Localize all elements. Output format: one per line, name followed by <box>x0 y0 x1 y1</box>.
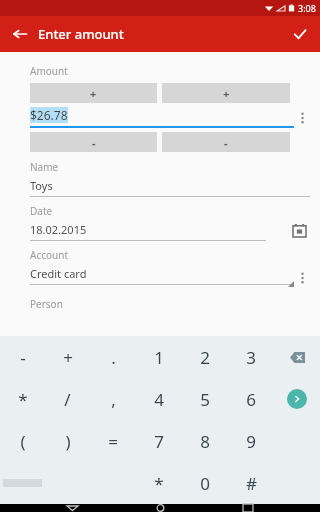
button[interactable]: 9 <box>228 420 274 462</box>
staticText: 8 <box>200 430 210 453</box>
staticText: 7 <box>154 430 164 453</box>
staticText: $26.78 <box>30 107 68 123</box>
button[interactable]: Date <box>30 204 288 241</box>
staticText: 3:08 <box>298 2 316 14</box>
staticText: Person <box>30 297 63 311</box>
button[interactable]: Back <box>60 504 84 512</box>
button[interactable]: + <box>162 83 290 103</box>
staticText: . <box>111 346 116 369</box>
staticText: ) <box>65 430 71 453</box>
other: Next <box>287 389 307 409</box>
staticText: # <box>246 472 257 495</box>
button[interactable]: - <box>30 132 157 152</box>
staticText: Credit card <box>30 266 87 281</box>
button[interactable]: / <box>45 378 90 420</box>
button[interactable]: Next <box>274 378 320 420</box>
button[interactable]: 6 <box>228 378 274 420</box>
button[interactable]: 7 <box>136 420 182 462</box>
staticText: + <box>63 346 73 369</box>
button[interactable]: = <box>90 420 136 462</box>
button[interactable]: ) <box>45 420 90 462</box>
button[interactable]: 2 <box>182 336 228 378</box>
staticText: , <box>111 388 116 411</box>
button[interactable]: Account <box>30 248 294 290</box>
button[interactable]: 8 <box>182 420 228 462</box>
staticText: 2 <box>200 346 210 369</box>
staticText: 0 <box>200 472 210 495</box>
staticText: Name <box>30 160 59 174</box>
staticText: 1 <box>154 346 164 369</box>
button[interactable]: Recents <box>236 504 260 512</box>
button[interactable]: * <box>0 378 45 420</box>
staticText: Toys <box>30 178 53 193</box>
button[interactable]: 5 <box>182 378 228 420</box>
staticText: - <box>20 346 26 369</box>
staticText: 3 <box>246 346 256 369</box>
button[interactable]: 4 <box>136 378 182 420</box>
button[interactable]: - <box>0 336 45 378</box>
button[interactable]: Pick date <box>288 219 310 241</box>
button[interactable]: More options <box>294 268 310 288</box>
staticText: 4 <box>154 388 164 411</box>
staticText: ( <box>20 430 26 453</box>
staticText: Date <box>30 204 53 218</box>
staticText: 5 <box>200 388 210 411</box>
button[interactable]: 1 <box>136 336 182 378</box>
staticText: * <box>154 472 164 495</box>
button[interactable]: - <box>162 132 290 152</box>
staticText: Account <box>30 248 69 262</box>
staticText: / <box>64 388 71 411</box>
button[interactable]: + <box>45 336 90 378</box>
button[interactable]: + <box>30 83 157 103</box>
staticText: 6 <box>246 388 256 411</box>
button[interactable]: More options <box>294 108 310 128</box>
button[interactable]: Back <box>6 20 34 48</box>
staticText: - <box>92 135 96 150</box>
staticText: 18.02.2015 <box>30 222 87 237</box>
button[interactable]: . <box>90 336 136 378</box>
button[interactable]: , <box>90 378 136 420</box>
staticText: + <box>223 86 230 101</box>
staticText: = <box>108 430 118 453</box>
button[interactable]: * <box>136 462 182 504</box>
button[interactable]: 0 <box>182 462 228 504</box>
button[interactable]: Home <box>148 504 172 512</box>
button[interactable] <box>274 336 320 378</box>
button[interactable]: Space <box>0 462 45 504</box>
button[interactable]: 3 <box>228 336 274 378</box>
staticText: - <box>224 135 228 150</box>
button[interactable]: Save <box>286 20 314 48</box>
button[interactable]: Name <box>30 160 310 197</box>
staticText: Amount <box>30 64 68 78</box>
staticText: * <box>18 388 28 411</box>
staticText: + <box>90 86 97 101</box>
staticText: Enter amount <box>38 25 124 43</box>
button[interactable]: ( <box>0 420 45 462</box>
staticText: 9 <box>246 430 256 453</box>
button[interactable]: # <box>228 462 274 504</box>
